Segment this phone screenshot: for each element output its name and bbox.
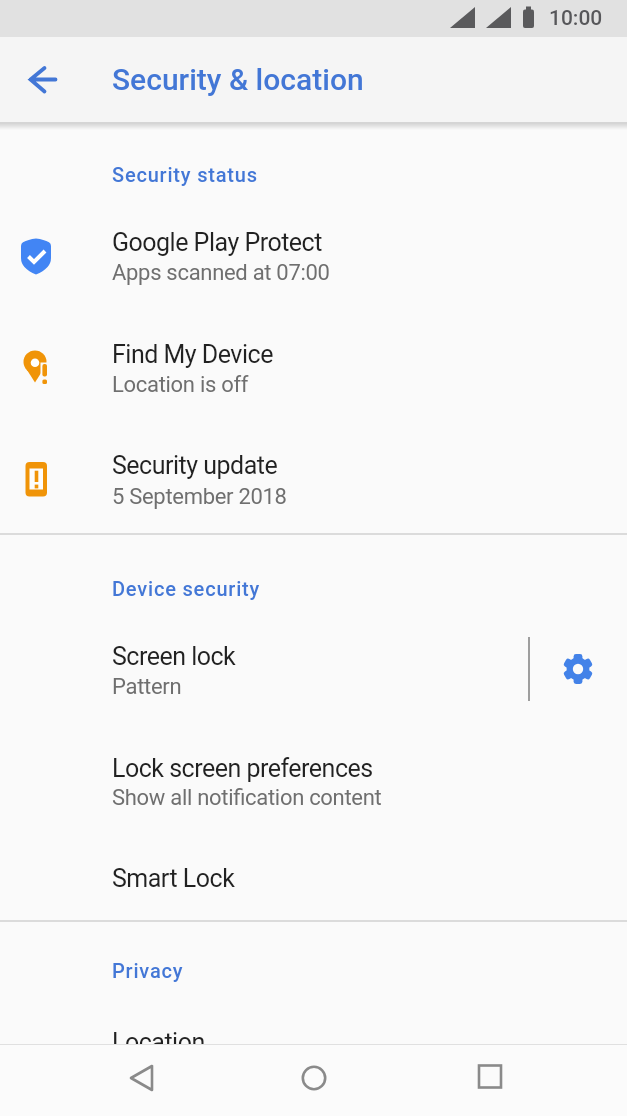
button[interactable] [459, 1052, 515, 1108]
staticText: Security status [112, 163, 258, 186]
staticText: Device security [112, 577, 261, 600]
button[interactable] [112, 1052, 168, 1108]
staticText: Location is off [112, 372, 249, 398]
button[interactable]: Location [0, 1007, 627, 1044]
staticText: Find My Device [112, 340, 273, 369]
button[interactable] [286, 1052, 342, 1108]
staticText: Show all notification content [112, 785, 382, 811]
staticText: Screen lock [112, 642, 236, 671]
staticText: 10:00 [549, 6, 603, 31]
button[interactable]: Lock screen preferences [0, 733, 627, 828]
staticText: Google Play Protect [112, 228, 322, 257]
staticText: Privacy [112, 959, 184, 982]
staticText: Pattern [112, 674, 182, 700]
button[interactable] [20, 57, 66, 103]
staticText: Location [112, 1028, 205, 1057]
staticText: Smart Lock [112, 864, 235, 893]
button[interactable]: Find My Device [0, 320, 627, 418]
button[interactable]: Smart Lock [0, 848, 627, 908]
staticText: Security & location [112, 62, 364, 97]
staticText: 5 September 2018 [112, 484, 287, 510]
button[interactable]: Google Play Protect [0, 208, 627, 306]
staticText: Security update [112, 451, 278, 480]
staticText: Lock screen preferences [112, 754, 373, 783]
button[interactable] [550, 641, 606, 697]
staticText: Apps scanned at 07:00 [112, 260, 330, 286]
button[interactable]: Security update [0, 431, 627, 529]
button[interactable]: Screen lock [0, 622, 627, 717]
